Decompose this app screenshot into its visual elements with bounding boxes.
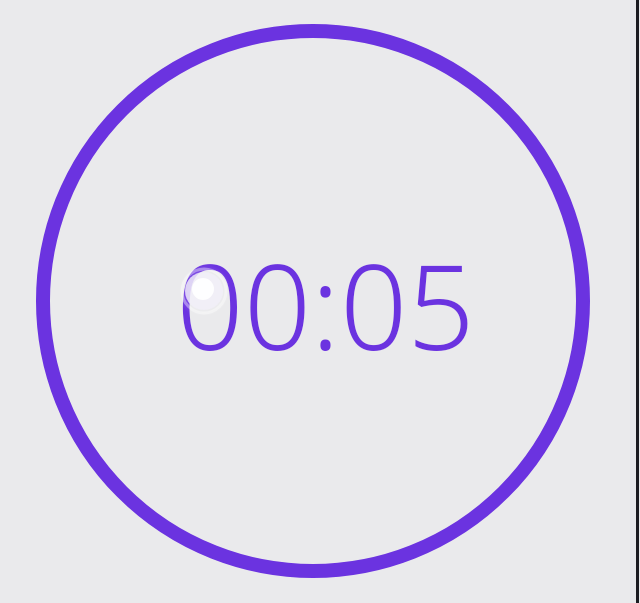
staticText: 00:05 [176,224,475,385]
button[interactable]: Timer dial, 00:05 remaining [0,0,640,603]
